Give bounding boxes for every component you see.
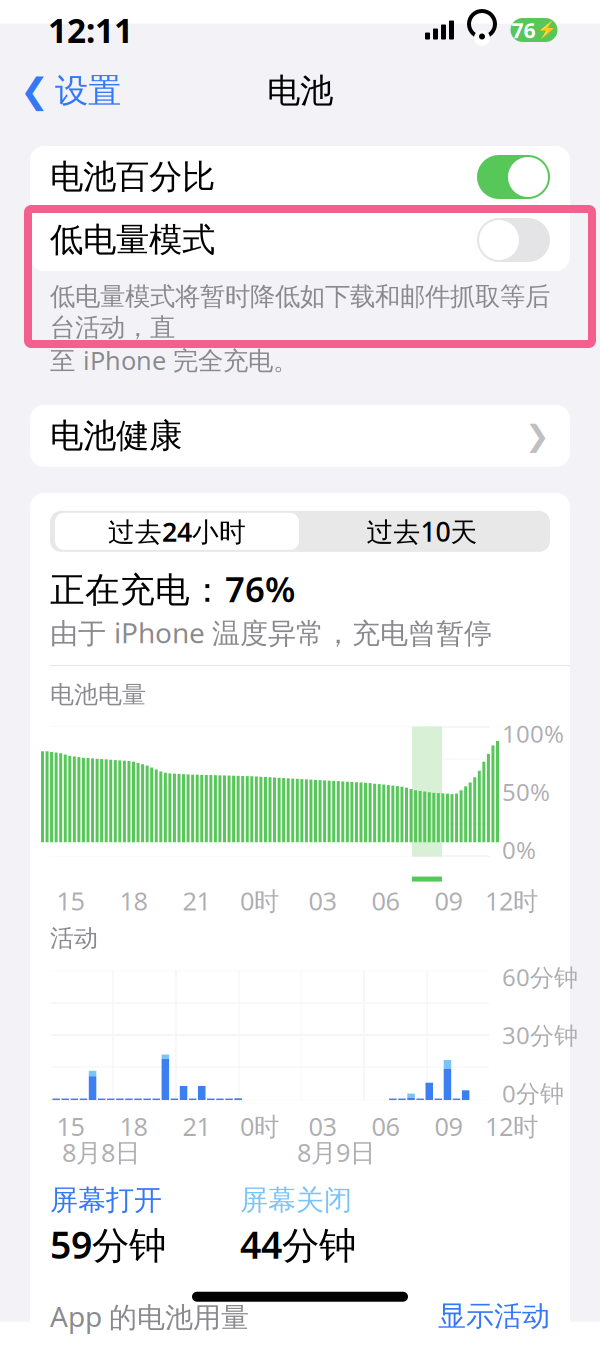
staticText: 正在充电：76% <box>50 566 295 612</box>
staticText: 06 <box>371 884 399 917</box>
staticText: 44分钟 <box>240 1219 356 1269</box>
staticText: 09 <box>434 884 462 917</box>
staticText: 0时 <box>240 884 279 917</box>
staticText: 12:11 <box>48 8 133 52</box>
button[interactable]: 过去10天 <box>299 513 545 550</box>
staticText: 设置 <box>55 70 121 111</box>
button[interactable]: 显示活动 <box>438 1295 550 1337</box>
staticText: 过去24小时 <box>108 514 246 549</box>
staticText: 100% <box>502 718 564 749</box>
staticText: 由于 iPhone 温度异常，充电曾暂停 <box>50 614 492 651</box>
staticText: 12时 <box>485 1109 538 1143</box>
staticText: 电池 <box>267 70 333 111</box>
staticText: 30分钟 <box>502 1019 578 1051</box>
staticText: 18 <box>119 884 147 917</box>
staticText: ❯ <box>525 419 550 452</box>
staticText: 18 <box>119 1109 147 1143</box>
staticText: 12时 <box>485 884 538 917</box>
staticText: App 的电池用量 <box>50 1298 249 1335</box>
button[interactable]: ❮ <box>0 64 121 117</box>
staticText: 电池百分比 <box>50 156 215 197</box>
staticText: 屏幕关闭 <box>240 1183 352 1217</box>
staticText: 15 <box>56 884 84 917</box>
staticText: 活动 <box>50 924 98 953</box>
staticText: 50% <box>502 776 550 807</box>
staticText: 60分钟 <box>502 961 578 993</box>
button[interactable]: 电池健康 <box>30 405 570 467</box>
staticText: ⚡ <box>536 21 556 39</box>
staticText: 59分钟 <box>50 1219 166 1269</box>
staticText: 过去10天 <box>366 514 477 549</box>
staticText: 8月8日 <box>62 1135 140 1169</box>
staticText: 21 <box>182 884 210 917</box>
button[interactable]: 低电量模式 <box>30 209 570 271</box>
staticText: 8月9日 <box>297 1135 375 1169</box>
button[interactable]: 过去24小时 <box>55 513 299 550</box>
staticText: 0时 <box>240 1109 279 1143</box>
staticText: 显示活动 <box>438 1299 550 1333</box>
staticText: 15 <box>56 1109 84 1143</box>
button[interactable]: 电池百分比 <box>30 146 570 208</box>
staticText: 屏幕打开 <box>50 1183 162 1217</box>
staticText: 76 <box>511 16 535 44</box>
staticText: 低电量模式将暂时降低如下载和邮件抓取等后台活动，直 至 iPhone 完全充电。 <box>50 281 550 377</box>
staticText: ❮ <box>20 71 49 111</box>
staticText: 06 <box>371 1109 399 1143</box>
staticText: 09 <box>434 1109 462 1143</box>
staticText: 低电量模式 <box>50 219 215 260</box>
staticText: 03 <box>308 884 336 917</box>
staticText: 0% <box>502 834 536 866</box>
staticText: 21 <box>182 1109 210 1143</box>
staticText: 电池电量 <box>50 680 146 710</box>
staticText: 电池健康 <box>50 415 182 456</box>
staticText: 03 <box>308 1109 336 1143</box>
staticText: 0分钟 <box>502 1077 564 1109</box>
